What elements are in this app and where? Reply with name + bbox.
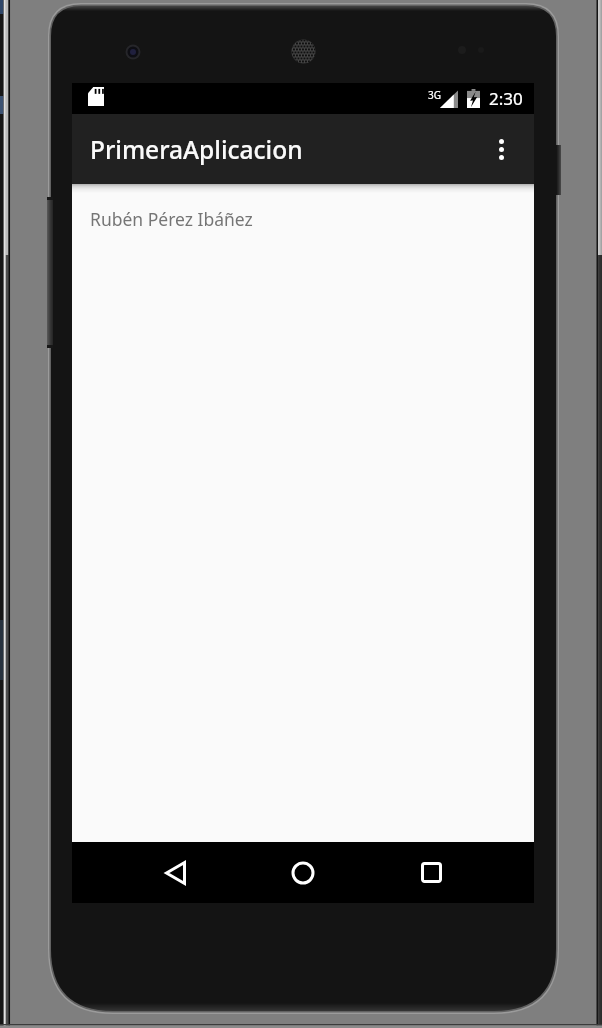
button[interactable]: Home xyxy=(271,842,335,903)
staticText: Rubén Pérez Ibáñez xyxy=(90,207,253,231)
staticText: 2:30 xyxy=(489,87,523,110)
staticText: 3G xyxy=(428,88,441,102)
button[interactable]: Recents xyxy=(399,842,463,903)
button[interactable]: More options xyxy=(477,125,525,173)
staticText: PrimeraAplicacion xyxy=(90,133,303,166)
button[interactable]: Back xyxy=(143,842,207,903)
